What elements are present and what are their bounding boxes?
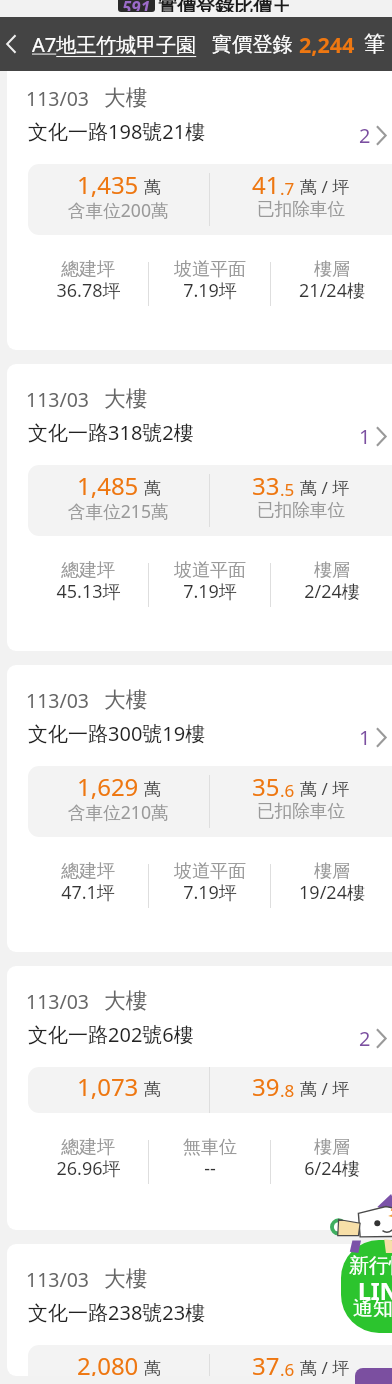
button[interactable]: 113/03 <box>7 71 392 350</box>
staticText: 591 <box>122 0 151 11</box>
staticText: 37 <box>252 1349 280 1376</box>
staticText: 樓層 <box>314 1136 350 1159</box>
staticText: 45.13坪 <box>56 579 121 604</box>
staticText: 文化一路202號6樓 <box>28 1021 194 1048</box>
staticText: 大樓 <box>104 987 147 1014</box>
staticText: .8 <box>280 1079 295 1102</box>
staticText: 總建坪 <box>61 258 115 281</box>
staticText: 39 <box>252 1070 280 1103</box>
staticText: 坡道平面 <box>174 258 246 281</box>
staticText: 1 <box>359 724 371 751</box>
staticText: 已扣除車位 <box>257 499 345 521</box>
staticText: 2 <box>359 1025 371 1052</box>
staticText: 大樓 <box>104 84 147 111</box>
staticText: 36.78坪 <box>56 278 121 303</box>
staticText: 萬 <box>144 1079 161 1100</box>
staticText: 無車位 <box>183 1136 237 1159</box>
staticText: 26.96坪 <box>56 1156 121 1181</box>
staticText: 7.19坪 <box>183 579 237 604</box>
staticText: 1,629 <box>77 770 139 803</box>
button[interactable]: Quick action <box>355 1368 392 1384</box>
staticText: 113/03 <box>26 988 90 1015</box>
staticText: 萬 / 坪 <box>300 777 350 800</box>
button[interactable]: 113/03 <box>7 364 392 651</box>
staticText: 樓層 <box>314 258 350 281</box>
staticText: 33 <box>252 469 280 502</box>
staticText: 已扣除車位 <box>257 198 345 220</box>
staticText: 19/24樓 <box>299 880 365 905</box>
staticText: 113/03 <box>26 386 90 413</box>
staticText: 含車位200萬 <box>68 198 169 222</box>
staticText: 萬 / 坪 <box>300 1356 350 1376</box>
staticText: 通知 <box>353 1296 392 1321</box>
staticText: 新行情 <box>349 1253 392 1278</box>
staticText: 113/03 <box>26 1266 90 1293</box>
staticText: 總建坪 <box>61 860 115 883</box>
staticText: 2,080 <box>77 1349 139 1376</box>
staticText: 7.19坪 <box>183 880 237 905</box>
staticText: .6 <box>280 779 295 802</box>
staticText: 2/24樓 <box>304 579 360 604</box>
staticText: 樓層 <box>314 559 350 582</box>
staticText: 47.1坪 <box>61 880 115 905</box>
staticText: 實價登錄比價王 <box>158 0 291 12</box>
staticText: 萬 / 坪 <box>300 476 350 499</box>
staticText: 大樓 <box>104 1265 147 1292</box>
staticText: 1,073 <box>77 1070 139 1103</box>
button[interactable]: A7地王竹城甲子園 <box>32 31 197 58</box>
staticText: 21/24樓 <box>299 278 365 303</box>
button[interactable]: Back <box>0 17 22 71</box>
staticText: .6 <box>280 1358 295 1376</box>
staticText: 2,244 <box>299 30 355 59</box>
staticText: 文化一路318號2樓 <box>28 419 194 446</box>
staticText: 總建坪 <box>61 1136 115 1159</box>
staticText: 1,435 <box>77 168 139 201</box>
staticText: 文化一路198號21樓 <box>28 118 206 145</box>
staticText: 含車位215萬 <box>68 499 169 523</box>
staticText: 7.19坪 <box>183 278 237 303</box>
staticText: 萬 / 坪 <box>300 175 350 198</box>
staticText: 坡道平面 <box>174 860 246 883</box>
staticText: 113/03 <box>26 687 90 714</box>
staticText: .5 <box>280 478 295 501</box>
staticText: -- <box>204 1156 216 1181</box>
staticText: LINE <box>358 1275 392 1306</box>
staticText: 已扣除車位 <box>257 800 345 822</box>
staticText: 萬 <box>144 177 161 198</box>
staticText: 大樓 <box>104 686 147 713</box>
staticText: 樓層 <box>314 860 350 883</box>
staticText: 文化一路300號19樓 <box>28 720 206 747</box>
staticText: 1,485 <box>77 469 139 502</box>
staticText: 萬 / 坪 <box>300 1077 350 1100</box>
staticText: 總建坪 <box>61 559 115 582</box>
staticText: 坡道平面 <box>174 559 246 582</box>
staticText: 筆 <box>364 31 385 57</box>
button[interactable]: 113/03 <box>7 966 392 1230</box>
staticText: 6/24樓 <box>304 1156 360 1181</box>
staticText: .7 <box>280 177 295 200</box>
staticText: 2 <box>359 122 371 149</box>
staticText: 41 <box>252 168 280 201</box>
staticText: 萬 <box>144 1358 161 1376</box>
staticText: 大樓 <box>104 385 147 412</box>
staticText: 113/03 <box>26 85 90 112</box>
button[interactable]: 113/03 <box>7 1244 392 1376</box>
staticText: 含車位210萬 <box>68 800 169 824</box>
staticText: 實價登錄 <box>212 32 293 57</box>
button[interactable]: 113/03 <box>7 665 392 952</box>
staticText: 萬 <box>144 779 161 800</box>
staticText: 1 <box>359 423 371 450</box>
staticText: 文化一路238號23樓 <box>28 1299 206 1326</box>
staticText: 萬 <box>144 478 161 499</box>
button[interactable]: LINE 通知 <box>341 1240 392 1333</box>
staticText: 2 <box>359 1303 371 1330</box>
staticText: 35 <box>252 770 280 803</box>
